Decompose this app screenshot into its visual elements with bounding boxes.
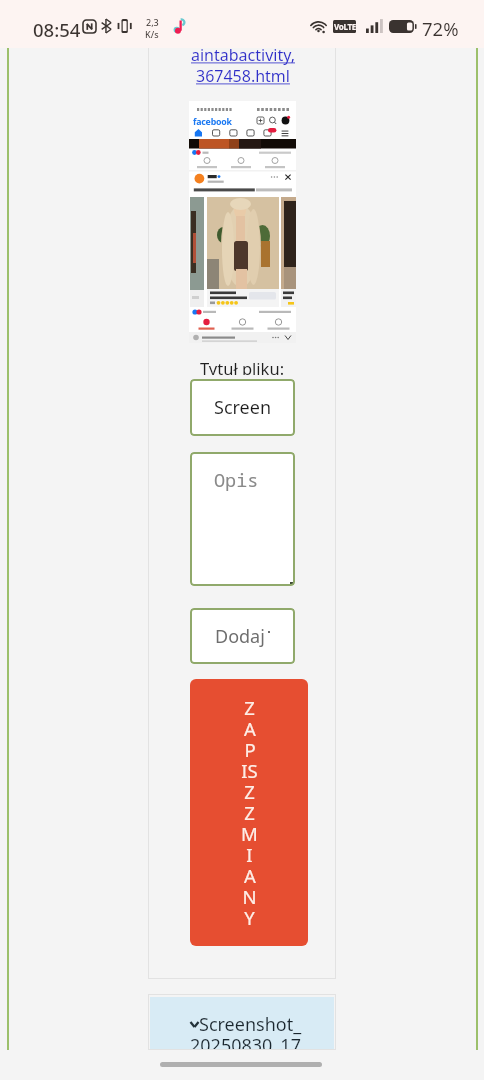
button[interactable]: Z [190, 679, 308, 946]
staticText: Z [244, 800, 255, 821]
staticText: Z [244, 695, 255, 716]
staticText: K/s [145, 28, 159, 40]
staticText: aintabactivity, [191, 44, 295, 65]
button[interactable]: Screenshot preview [189, 101, 296, 343]
staticText: 2,3 [146, 16, 159, 28]
staticText: A [244, 716, 256, 737]
staticText: Dodaj [215, 624, 265, 649]
staticText: N [242, 884, 257, 905]
button[interactable]: Screen [190, 379, 295, 436]
staticText: 08:54 [33, 17, 81, 42]
button[interactable]: Screenshot_ [148, 994, 336, 1050]
staticText: VoLTE [334, 21, 356, 32]
staticText: Y [244, 905, 255, 926]
staticText: Tytuł pliku: [200, 357, 285, 375]
staticText: Opis [214, 467, 259, 492]
staticText: Screenshot_ [199, 1012, 302, 1037]
staticText: 20250830_17 [190, 1033, 301, 1050]
button[interactable]: Dodaj [190, 608, 295, 664]
staticText: facebook [193, 116, 232, 128]
staticText: Z [244, 779, 255, 800]
staticText: M [241, 821, 258, 842]
staticText: P [244, 737, 256, 758]
staticText: A [244, 863, 256, 884]
staticText: Screen [214, 395, 272, 420]
staticText: I [246, 842, 253, 863]
button[interactable]: aintabactivity, [183, 44, 303, 86]
staticText: IS [241, 758, 258, 779]
staticText: 367458.html [196, 65, 290, 86]
staticText: 72% [422, 16, 459, 41]
button[interactable]: Opis [190, 452, 295, 586]
